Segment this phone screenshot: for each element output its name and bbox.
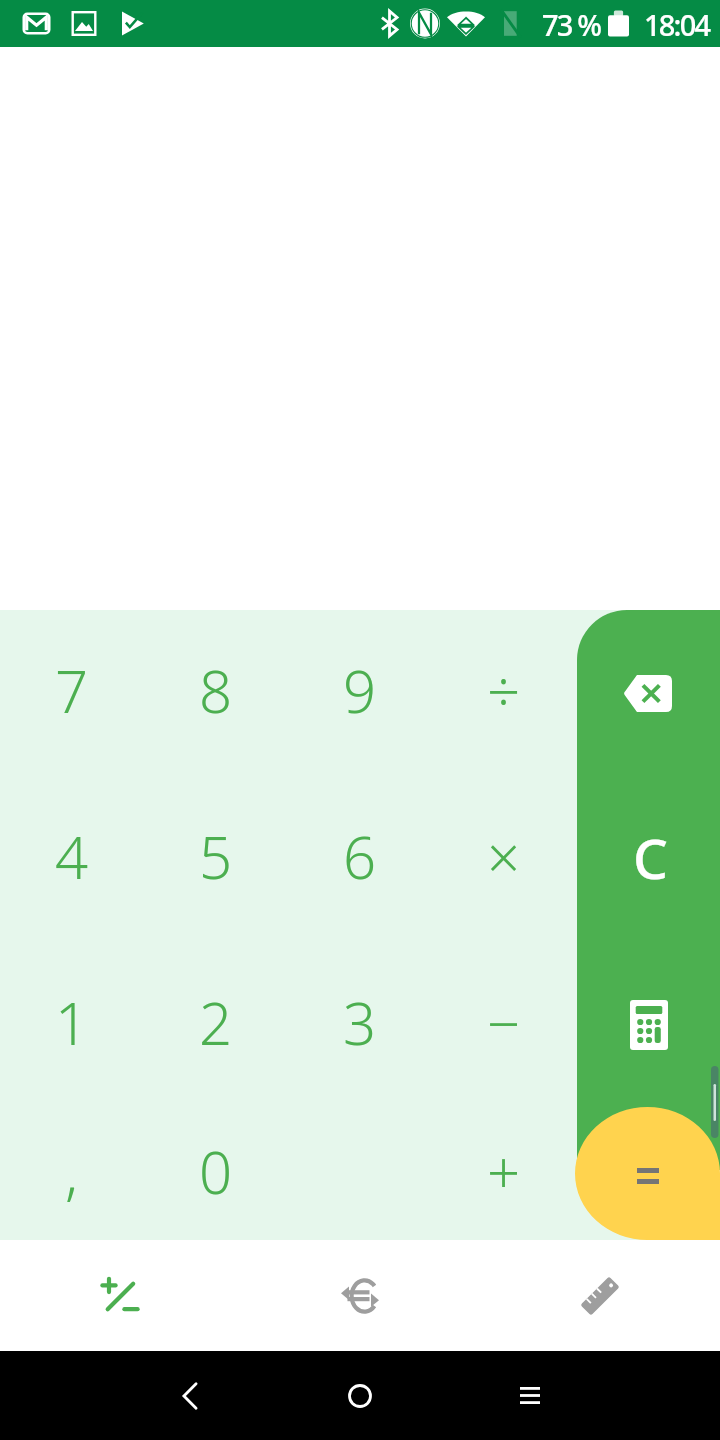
staticText: 4 — [55, 817, 89, 896]
button[interactable]: ÷ — [432, 610, 576, 776]
staticText: 3 — [343, 983, 377, 1062]
button[interactable]: 9 — [288, 610, 432, 776]
button[interactable]: 5 — [144, 776, 288, 942]
staticText: 73 % — [542, 5, 601, 44]
button[interactable]: + — [432, 1108, 576, 1240]
staticText: 9 — [343, 651, 377, 730]
button[interactable]: Sign change — [0, 1240, 240, 1351]
button[interactable]: × — [432, 776, 576, 942]
button[interactable]: Home — [320, 1351, 400, 1440]
staticText: 18:04 — [644, 5, 710, 44]
button[interactable]: , — [0, 1108, 144, 1240]
button[interactable]: Recent apps — [490, 1351, 570, 1440]
button[interactable]: 4 — [0, 776, 144, 942]
staticText: 0 — [199, 1132, 233, 1211]
button[interactable]: 7 — [0, 610, 144, 776]
staticText: , — [65, 1132, 79, 1211]
staticText: 1 — [55, 983, 89, 1062]
button[interactable]: Backspace — [577, 610, 720, 776]
button[interactable]: − — [432, 942, 576, 1108]
staticText: C — [633, 820, 668, 895]
staticText: 2 — [199, 983, 233, 1062]
staticText: 5 — [199, 817, 233, 896]
button[interactable]: Unit converter — [480, 1240, 720, 1351]
staticText: + — [487, 1132, 521, 1211]
staticText: ÷ — [487, 651, 521, 730]
button[interactable]: Equals — [575, 1107, 720, 1240]
staticText: 6 — [343, 817, 377, 896]
button[interactable]: 0 — [144, 1108, 288, 1240]
button[interactable]: 6 — [288, 776, 432, 942]
button[interactable]: Currency converter — [240, 1240, 480, 1351]
button[interactable]: Calculator — [577, 942, 720, 1108]
button[interactable]: 2 — [144, 942, 288, 1108]
button[interactable]: Back — [150, 1351, 230, 1440]
button[interactable]: C — [577, 776, 720, 942]
button[interactable]: 3 — [288, 942, 432, 1108]
staticText: × — [487, 817, 521, 896]
staticText: 7 — [55, 651, 89, 730]
staticText: − — [487, 983, 521, 1062]
button[interactable]: 8 — [144, 610, 288, 776]
staticText: 8 — [199, 651, 233, 730]
button[interactable]: 1 — [0, 942, 144, 1108]
